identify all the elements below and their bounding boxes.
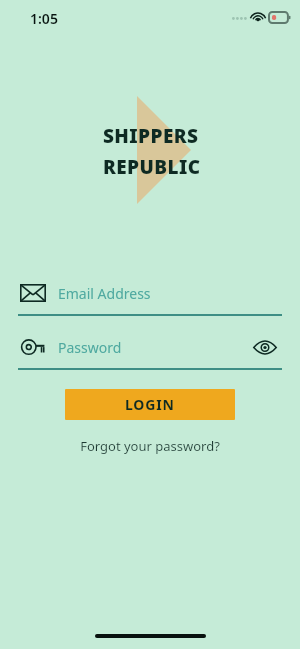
staticText: Email Address [58,284,151,303]
button[interactable]: Password [20,338,250,357]
button[interactable]: Show password [250,332,280,362]
button[interactable]: Forgot your password? [70,434,230,458]
staticText: LOGIN [125,395,175,414]
staticText: Forgot your password? [80,437,220,455]
staticText: REPUBLIC [103,154,201,180]
button[interactable]: LOGIN [65,389,235,420]
staticText: Password [58,338,122,357]
staticText: SHIPPERS [103,123,199,149]
staticText: 1:05 [30,9,58,28]
button[interactable]: Email Address [20,278,280,308]
